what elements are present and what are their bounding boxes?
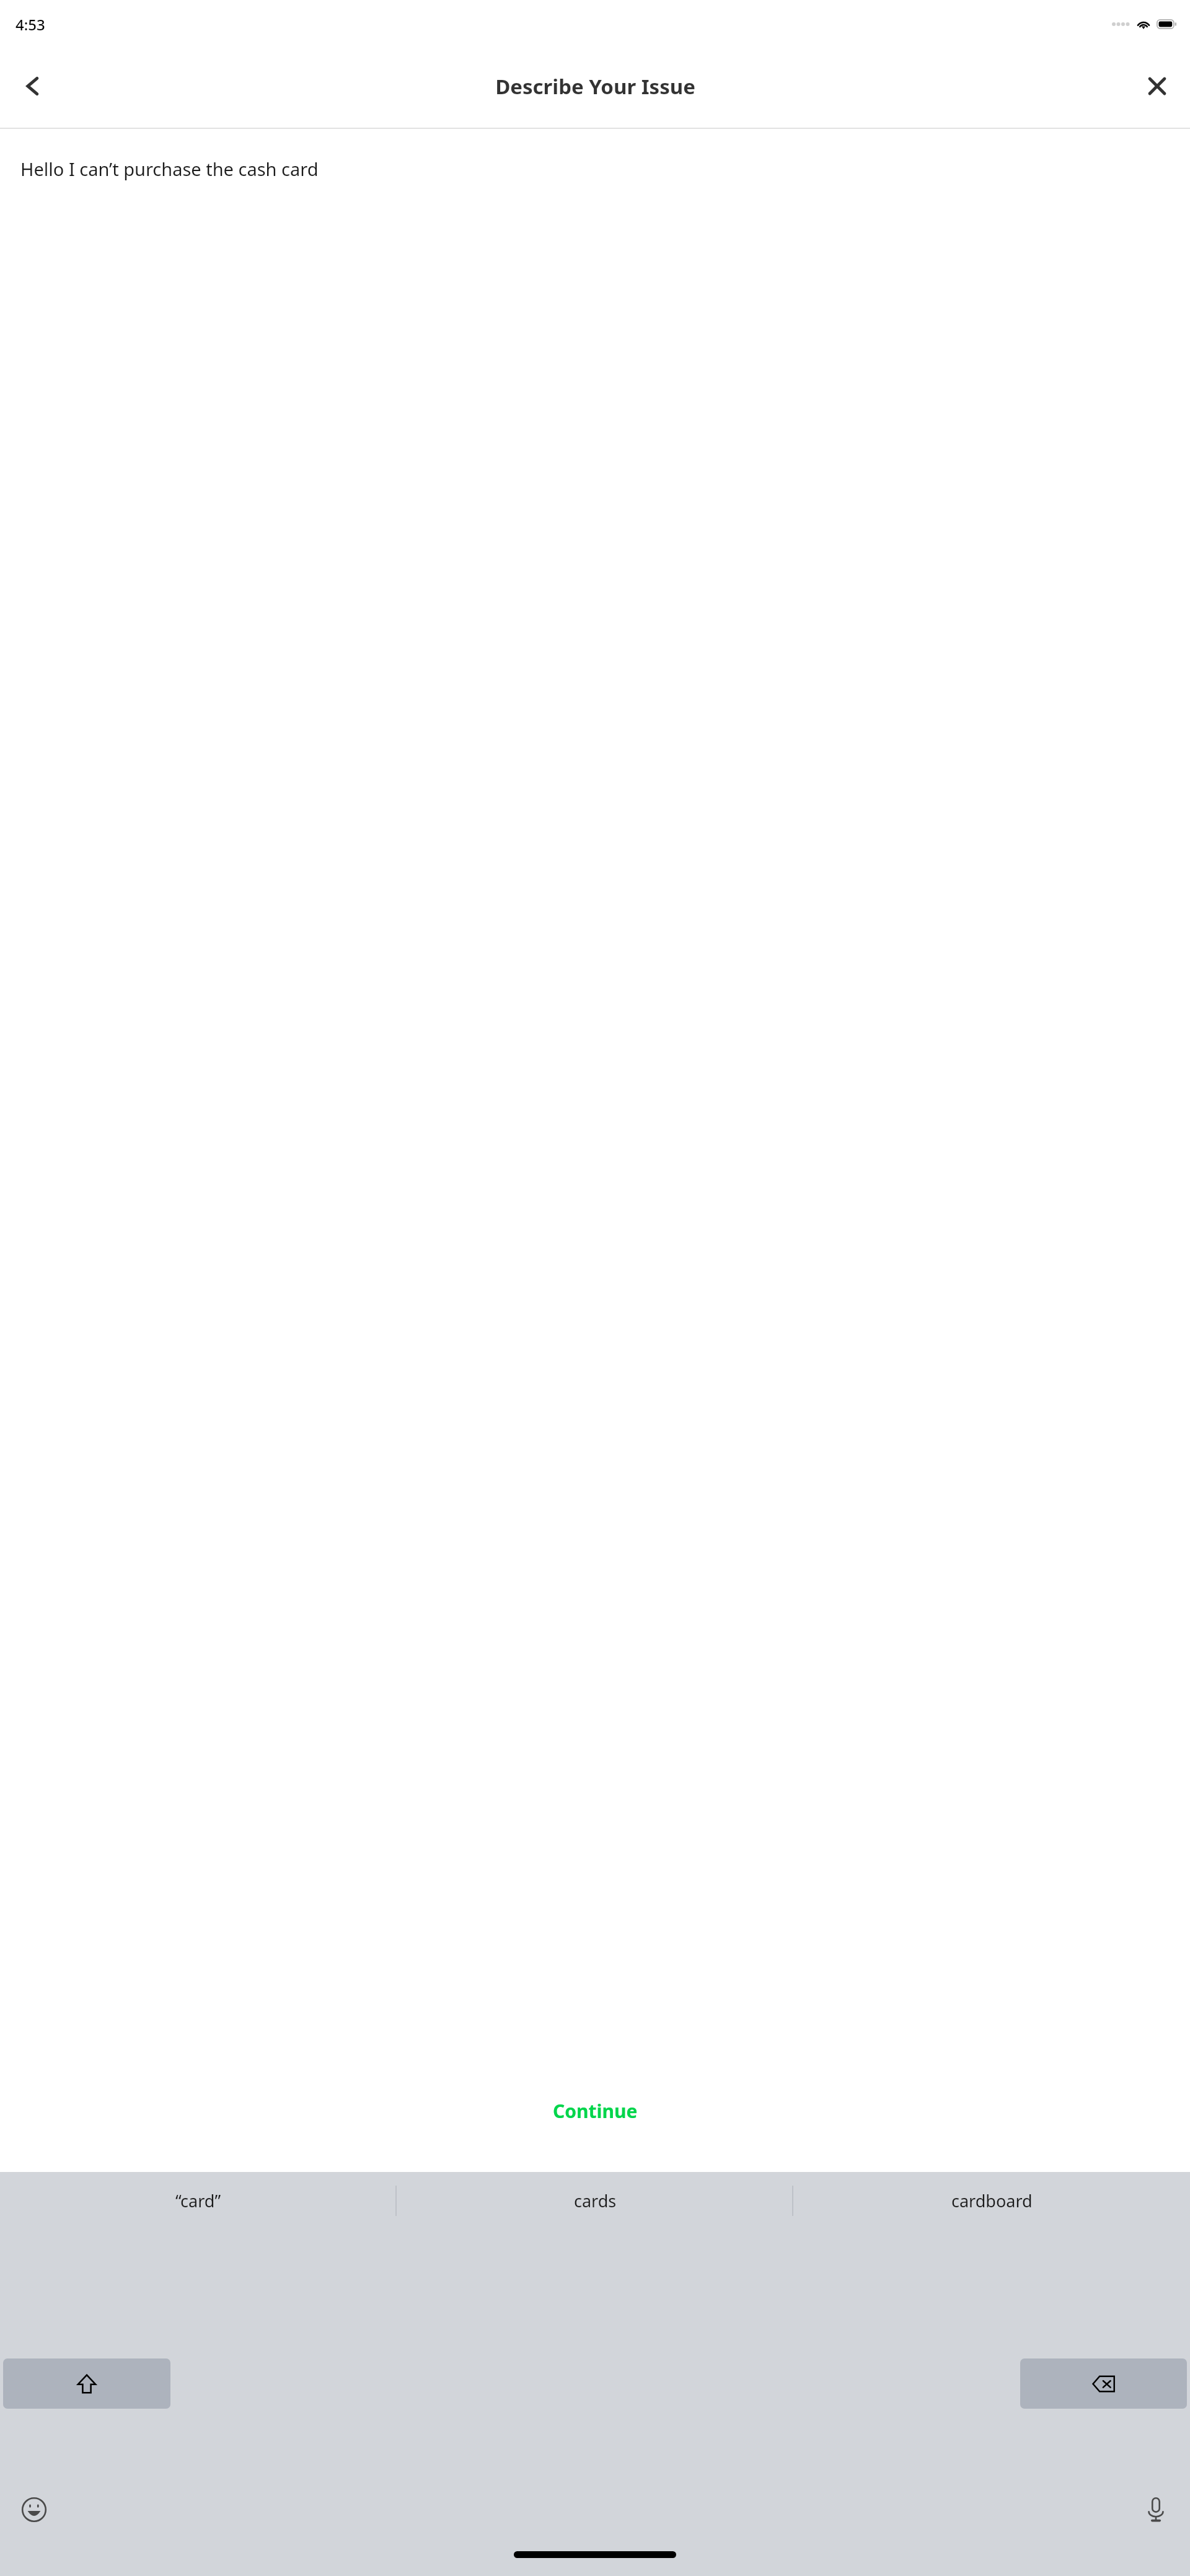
button[interactable]: cardboard bbox=[793, 2172, 1190, 2230]
staticText: cardboard bbox=[951, 2189, 1033, 2212]
staticText: “card” bbox=[175, 2189, 221, 2212]
button[interactable]: Dictation bbox=[1135, 2489, 1176, 2530]
staticText: 4:53 bbox=[15, 14, 45, 35]
button[interactable]: Backspace bbox=[1020, 2358, 1187, 2409]
button[interactable]: “card” bbox=[0, 2172, 397, 2230]
staticText: Hello I can’t purchase the cash card bbox=[20, 157, 319, 181]
staticText: cards bbox=[574, 2189, 617, 2212]
button[interactable]: Close bbox=[1133, 62, 1181, 110]
staticText: Describe Your Issue bbox=[495, 73, 695, 100]
button[interactable]: Emoji bbox=[14, 2489, 55, 2530]
button[interactable]: Shift bbox=[3, 2358, 170, 2409]
button[interactable]: Back bbox=[9, 62, 57, 110]
staticText: Continue bbox=[553, 2098, 638, 2124]
button[interactable]: Continue bbox=[0, 2091, 1190, 2131]
button[interactable]: cards bbox=[397, 2172, 793, 2230]
